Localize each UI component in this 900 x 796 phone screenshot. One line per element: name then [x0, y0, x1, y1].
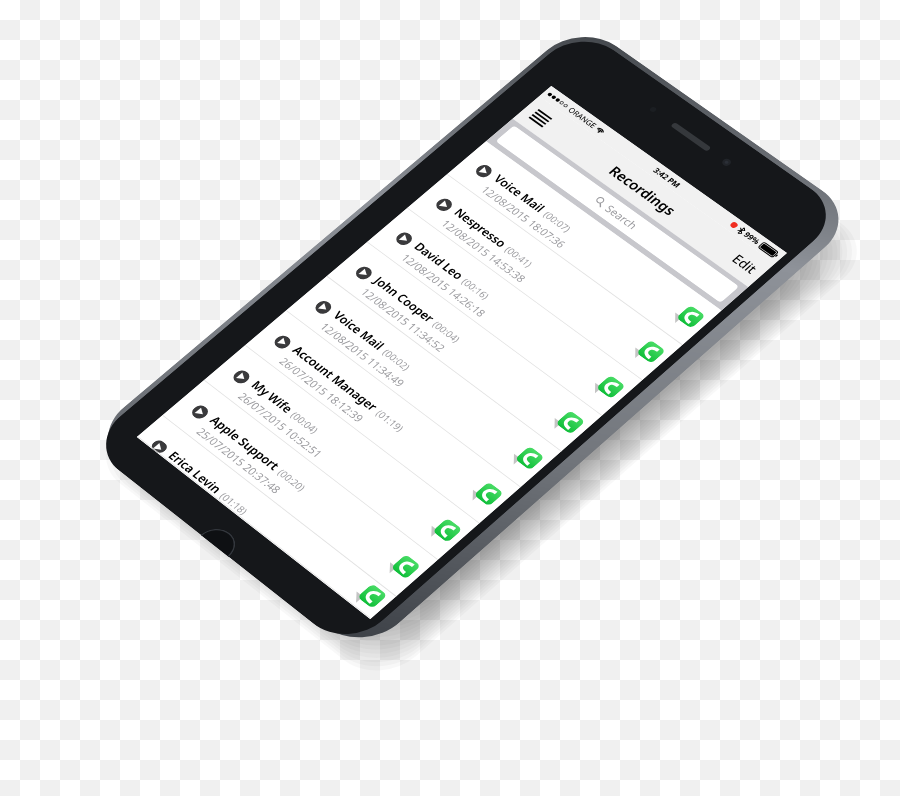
staticText: (00:07) [541, 209, 574, 234]
staticText: (00:04) [288, 409, 322, 436]
button[interactable]: Call back [555, 410, 585, 435]
staticText: 26/07/2015 18:12:39 [276, 355, 367, 425]
button[interactable]: Play recording [230, 368, 253, 386]
button[interactable]: Call back [596, 375, 626, 399]
button[interactable]: Call back [390, 554, 421, 579]
button[interactable]: Play recording [353, 264, 375, 282]
staticText: David Leo [411, 239, 468, 282]
button[interactable]: Play recording [393, 230, 415, 248]
staticText: (00:04) [430, 318, 463, 345]
button[interactable]: Play recording [326, 242, 601, 452]
staticText: (00:02) [380, 346, 413, 373]
button[interactable]: Play recording [367, 208, 642, 416]
staticText: (00:41) [502, 244, 536, 269]
button[interactable]: Play recording [312, 298, 334, 316]
staticText: Erica Levin [165, 448, 226, 497]
staticText: Edit [728, 251, 762, 277]
staticText: My Wife [248, 377, 297, 416]
staticText: Recordings [604, 162, 681, 219]
button[interactable]: Call back [636, 340, 666, 364]
button[interactable]: Menu [519, 101, 563, 135]
staticText: 26/07/2015 10:52:51 [235, 390, 326, 460]
button[interactable]: Play recording [447, 141, 721, 345]
button[interactable]: Play recording [433, 196, 455, 213]
button[interactable]: Play recording [162, 381, 437, 597]
button[interactable]: Home [201, 522, 244, 557]
button[interactable]: Search [495, 125, 739, 303]
button[interactable]: Call back [514, 446, 545, 470]
button[interactable]: Play recording [245, 311, 520, 524]
staticText: 3:42 PM [651, 165, 684, 190]
button[interactable]: Play recording [473, 162, 495, 180]
staticText: 12/08/2015 14:26:18 [398, 251, 489, 320]
button[interactable]: Call back [357, 583, 388, 609]
button[interactable]: Call back [473, 482, 504, 506]
button[interactable]: Play recording [137, 416, 395, 619]
staticText: (00:16) [459, 276, 492, 301]
button[interactable]: Play recording [203, 346, 479, 560]
button[interactable]: Call back [432, 518, 463, 543]
staticText: 99% [741, 229, 763, 246]
staticText: 12/08/2015 18:07:36 [478, 183, 569, 251]
button[interactable]: Play recording [149, 438, 170, 455]
staticText: 12/08/2015 11:34:52 [357, 285, 448, 355]
button[interactable]: Play recording [189, 403, 211, 421]
button[interactable]: Call back [676, 305, 706, 329]
staticText: Search [602, 202, 641, 232]
staticText: (01:19) [373, 407, 407, 434]
staticText: Account Manager [289, 342, 382, 414]
staticText: John Cooper [371, 273, 439, 325]
button[interactable]: Play recording [286, 277, 561, 488]
button[interactable]: Edit [728, 251, 762, 277]
staticText: Nespresso [451, 205, 511, 250]
staticText: Voice Mail [330, 308, 389, 353]
button[interactable]: Play recording [407, 175, 682, 381]
staticText: (01:18) [217, 490, 251, 517]
staticText: (00:20) [275, 466, 309, 493]
staticText: 12/08/2015 11:34:49 [317, 320, 408, 390]
button[interactable]: Play recording [271, 333, 294, 351]
staticText: ORANGE [566, 105, 599, 130]
staticText: Voice Mail [491, 171, 549, 215]
staticText: 25/07/2015 20:37:48 [193, 425, 284, 496]
staticText: 12/08/2015 14:53:38 [438, 217, 529, 285]
staticText: Apple Support [207, 412, 284, 473]
